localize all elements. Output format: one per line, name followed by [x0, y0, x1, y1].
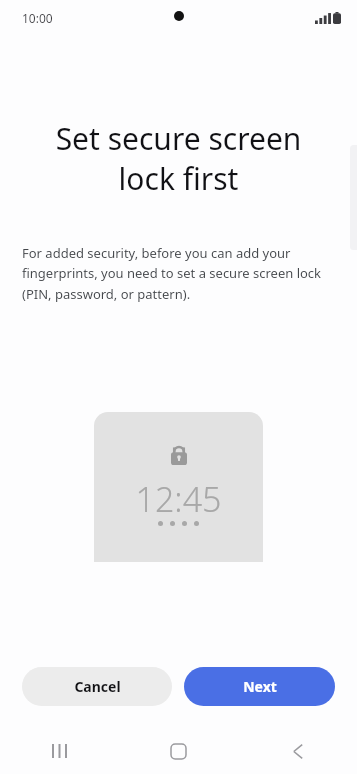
- button[interactable]: Back: [238, 728, 357, 774]
- staticText: Cancel: [74, 677, 121, 696]
- staticText: Set secure screen lock first: [18, 118, 339, 199]
- button[interactable]: Recent apps: [0, 728, 119, 774]
- button[interactable]: Home: [119, 728, 238, 774]
- staticText: For added security, before you can add y…: [22, 244, 323, 303]
- staticText: 10:00: [22, 10, 53, 26]
- staticText: Next: [243, 677, 277, 696]
- button[interactable]: Cancel: [22, 667, 172, 706]
- staticText: 12:45: [94, 476, 263, 522]
- button[interactable]: Next: [184, 667, 335, 706]
